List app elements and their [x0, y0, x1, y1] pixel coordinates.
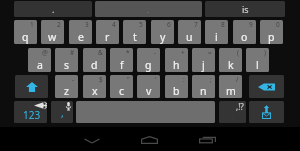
button[interactable]: Voice input	[51, 101, 73, 123]
button[interactable]: 9	[233, 20, 256, 44]
button[interactable]: '	[137, 75, 160, 98]
button[interactable]: Send	[249, 101, 284, 123]
staticText: 123	[23, 108, 41, 122]
staticText: m	[226, 84, 236, 98]
staticText: ;	[210, 75, 212, 84]
button[interactable]: Home	[127, 127, 171, 151]
staticText: )	[264, 48, 266, 57]
staticText: 9	[249, 20, 253, 29]
staticText: s	[64, 58, 70, 72]
button[interactable]: Backspace	[249, 75, 284, 98]
staticText: .	[147, 3, 150, 15]
button[interactable]: /	[219, 75, 242, 98]
button[interactable]: 7	[178, 20, 201, 44]
staticText: y	[160, 30, 166, 44]
staticText: #	[70, 48, 75, 57]
staticText: k	[228, 58, 234, 72]
staticText: '	[155, 75, 157, 84]
button[interactable]: 3	[69, 20, 92, 44]
staticText: -	[154, 48, 157, 57]
staticText: -	[72, 75, 75, 84]
staticText: 5	[139, 20, 143, 29]
button[interactable]: 6	[151, 20, 174, 44]
button[interactable]: =	[192, 48, 215, 72]
staticText: +	[181, 48, 185, 57]
button[interactable]: 4	[96, 20, 119, 44]
staticText: is	[242, 3, 249, 15]
staticText: t	[133, 30, 137, 44]
button[interactable]: is	[205, 1, 285, 17]
staticText: v	[146, 84, 152, 98]
staticText: x	[92, 84, 98, 98]
staticText: ,!?	[236, 101, 244, 112]
button[interactable]: $	[83, 75, 106, 98]
button[interactable]: 2	[41, 20, 64, 44]
button[interactable]: *	[110, 48, 133, 72]
staticText: @	[42, 48, 48, 57]
staticText: *	[126, 48, 130, 57]
staticText: $	[99, 75, 103, 84]
staticText: j	[202, 58, 205, 72]
staticText: u	[186, 30, 193, 44]
staticText: (	[237, 48, 239, 57]
staticText: 7	[194, 20, 198, 29]
button[interactable]: #	[55, 48, 78, 72]
button[interactable]: 8	[205, 20, 228, 44]
button[interactable]: &	[83, 48, 106, 72]
button[interactable]: (	[219, 48, 242, 72]
button[interactable]: "	[110, 75, 133, 98]
button[interactable]: 1	[14, 20, 37, 44]
staticText: :	[183, 75, 185, 84]
staticText: &	[98, 48, 103, 57]
button[interactable]: @	[28, 48, 51, 72]
button[interactable]: ;	[192, 75, 215, 98]
staticText: c	[119, 84, 125, 98]
button[interactable]: -	[55, 75, 78, 98]
staticText: 8	[221, 20, 225, 29]
button[interactable]: 123	[14, 101, 47, 123]
button[interactable]: Recents	[185, 127, 229, 151]
staticText: d	[91, 58, 98, 72]
button[interactable]: .	[14, 1, 92, 17]
staticText: 4	[112, 20, 116, 29]
staticText: =	[208, 48, 212, 57]
staticText: ,	[61, 106, 64, 120]
staticText: w	[48, 30, 57, 44]
staticText: l	[256, 58, 259, 72]
staticText: 6	[167, 20, 171, 29]
staticText: 0	[276, 20, 280, 29]
button[interactable]: +	[165, 48, 188, 72]
staticText: r	[105, 30, 110, 44]
staticText: 1	[30, 20, 34, 29]
button[interactable]: ,!?	[219, 101, 246, 123]
staticText: f	[120, 58, 124, 72]
staticText: q	[22, 30, 29, 44]
staticText: g	[145, 58, 152, 72]
staticText: b	[173, 84, 180, 98]
staticText: .	[52, 3, 55, 15]
staticText: 3	[85, 20, 89, 29]
staticText: 2	[57, 20, 61, 29]
button[interactable]: 0	[260, 20, 283, 44]
staticText: "	[127, 75, 130, 84]
staticText: n	[200, 84, 207, 98]
staticText: o	[241, 30, 248, 44]
button[interactable]: Hide keyboard	[70, 127, 114, 151]
staticText: e	[78, 30, 84, 44]
staticText: /	[236, 75, 239, 84]
staticText: h	[173, 58, 180, 72]
button[interactable]: Shift	[15, 75, 48, 98]
staticText: z	[64, 84, 69, 98]
staticText: i	[215, 30, 218, 44]
staticText: a	[37, 58, 43, 72]
button[interactable]: 5	[123, 20, 146, 44]
button[interactable]: )	[246, 48, 269, 72]
button[interactable]: -	[137, 48, 160, 72]
staticText: p	[268, 30, 275, 44]
button[interactable]: :	[165, 75, 188, 98]
